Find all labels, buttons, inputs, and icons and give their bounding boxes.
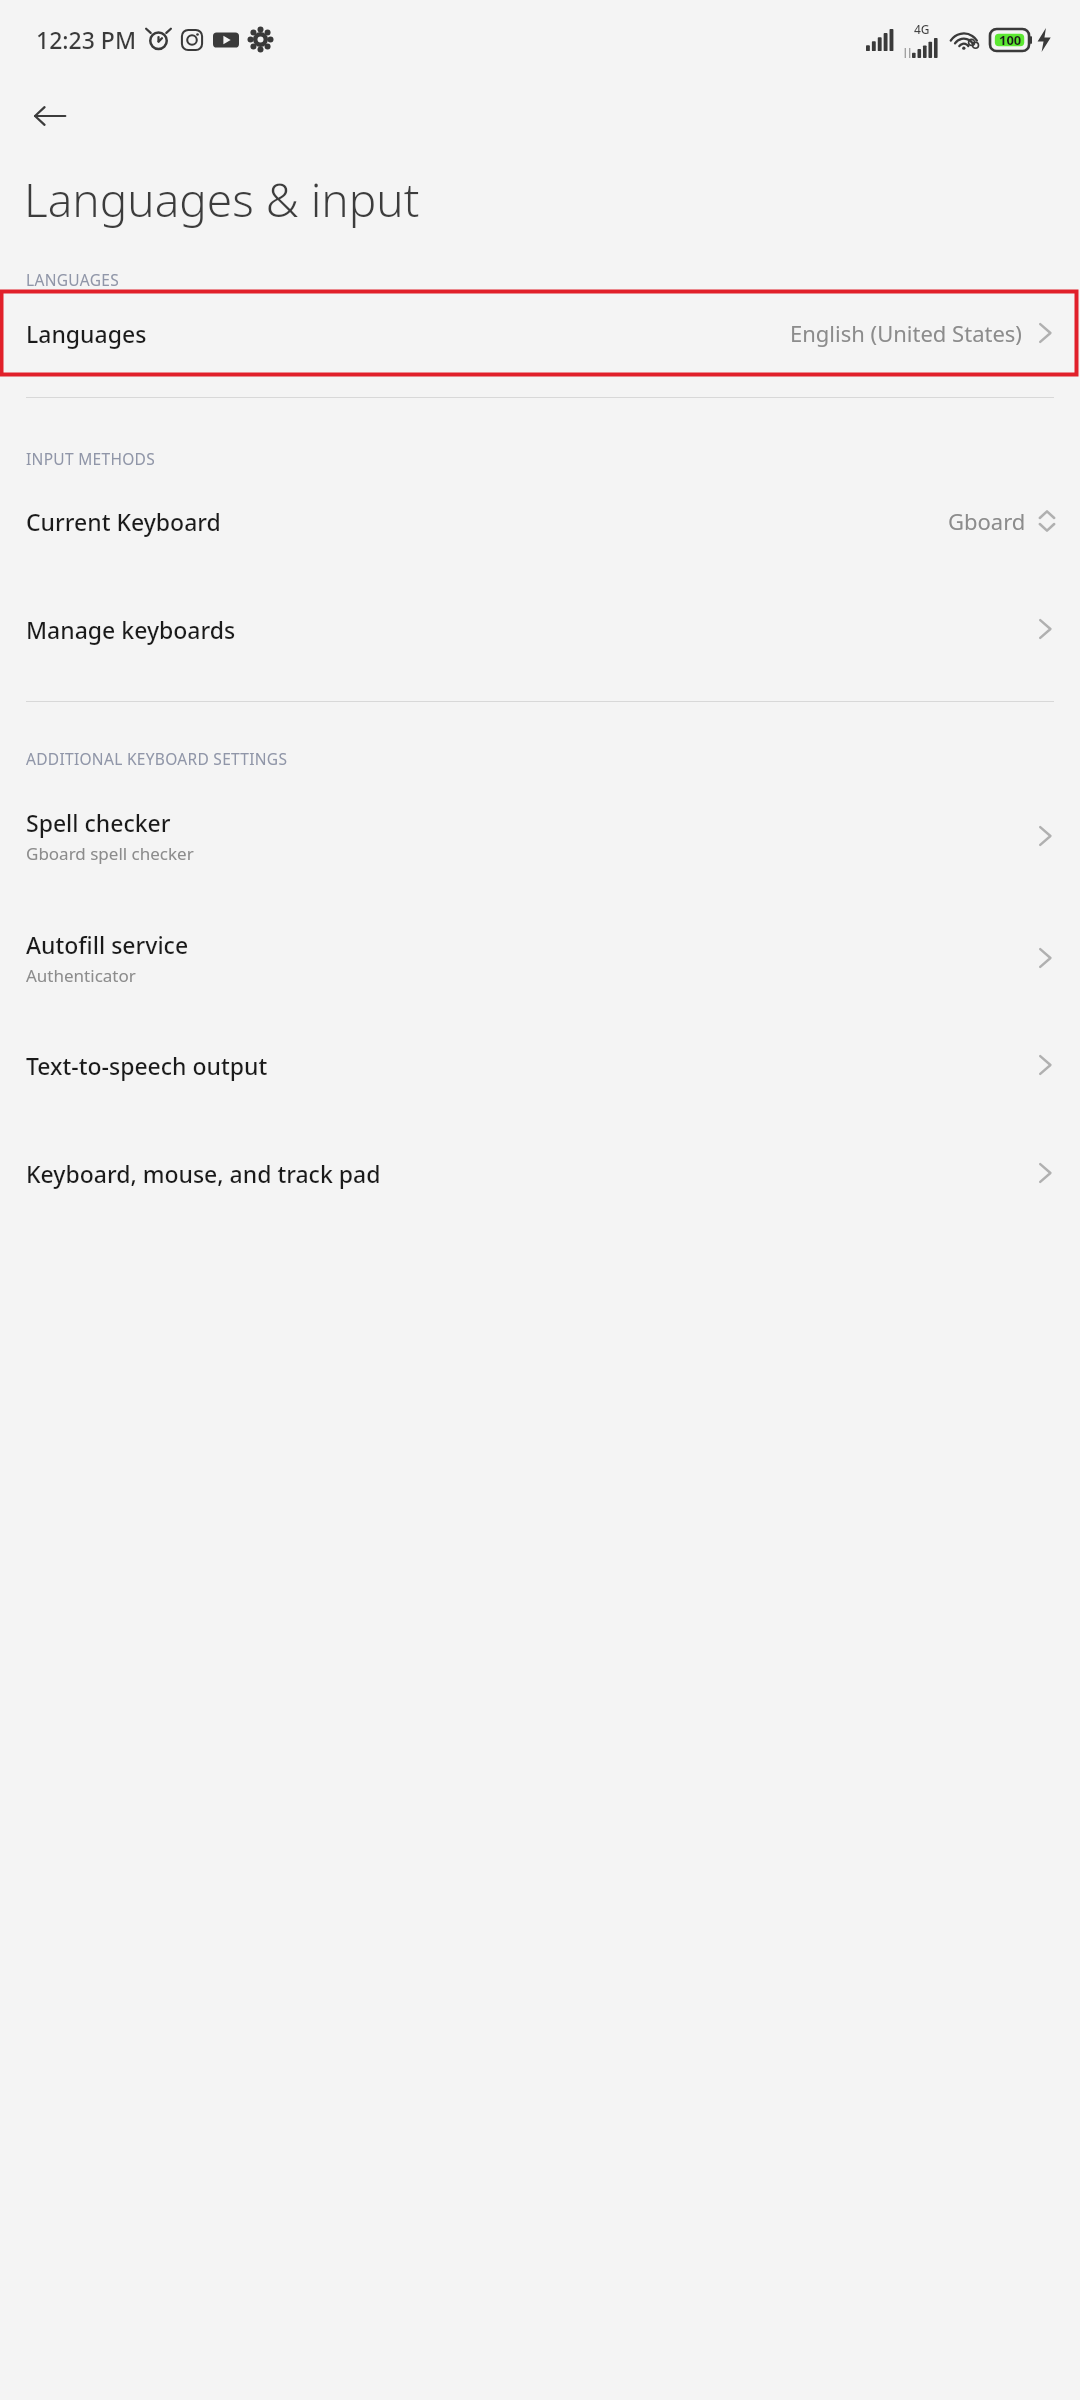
staticText: Text-to-speech output [26, 1050, 268, 1081]
staticText: 4G [914, 21, 930, 37]
staticText: Manage keyboards [26, 614, 236, 645]
staticText: Autofill service [26, 929, 189, 960]
button[interactable]: Back [22, 88, 78, 144]
staticText: INPUT METHODS [26, 448, 156, 469]
staticText: Languages & input [24, 168, 420, 231]
staticText: Authenticator [26, 964, 136, 987]
button[interactable]: Spell checker [0, 789, 1080, 883]
staticText: Current Keyboard [26, 506, 221, 537]
button[interactable]: Manage keyboards [0, 593, 1080, 665]
button[interactable]: Keyboard, mouse, and track pad [0, 1137, 1080, 1209]
staticText: English (United States) [790, 318, 1022, 348]
staticText: LANGUAGES [26, 269, 119, 290]
button[interactable]: Languages [0, 290, 1080, 376]
staticText: Gboard [948, 506, 1026, 536]
staticText: Languages [26, 318, 147, 349]
staticText: Keyboard, mouse, and track pad [26, 1158, 381, 1189]
staticText: ADDITIONAL KEYBOARD SETTINGS [26, 748, 288, 769]
staticText: 12:23 PM [36, 24, 137, 55]
button[interactable]: Autofill service [0, 911, 1080, 1005]
staticText: 100 [999, 31, 1022, 49]
button[interactable]: Current Keyboard [0, 485, 1080, 557]
button[interactable]: Text-to-speech output [0, 1029, 1080, 1101]
staticText: Gboard spell checker [26, 842, 194, 865]
staticText: Spell checker [26, 807, 171, 838]
